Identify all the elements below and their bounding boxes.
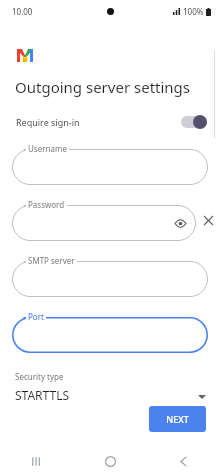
- staticText: SMTP server: [28, 255, 75, 266]
- staticText: 10.00: [12, 6, 33, 17]
- staticText: STARTTLS: [15, 387, 70, 403]
- staticText: Require sign-in: [16, 116, 80, 128]
- button[interactable]: Security type: [0, 371, 220, 403]
- button[interactable]: Username: [12, 143, 208, 185]
- button[interactable]: Port: [12, 311, 208, 353]
- staticText: Security type: [15, 371, 64, 382]
- staticText: Port: [28, 311, 44, 322]
- staticText: 100%: [183, 6, 204, 17]
- button[interactable]: Recents: [0, 446, 74, 476]
- button[interactable]: SMTP server: [12, 255, 208, 297]
- button[interactable]: NEXT: [149, 406, 206, 432]
- button[interactable]: Show password: [12, 199, 196, 241]
- staticText: Username: [28, 143, 67, 154]
- button[interactable]: Require sign-in: [0, 111, 220, 133]
- staticText: Password: [28, 199, 65, 210]
- staticText: Outgoing server settings: [15, 77, 191, 97]
- button[interactable]: Clear password: [199, 211, 217, 229]
- button[interactable]: Show password: [172, 215, 188, 231]
- staticText: NEXT: [166, 413, 189, 425]
- button[interactable]: Home: [74, 446, 147, 476]
- button[interactable]: Back: [147, 446, 220, 476]
